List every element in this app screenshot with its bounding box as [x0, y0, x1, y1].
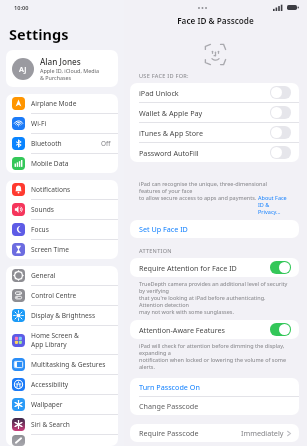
button[interactable]: Bluetooth	[6, 134, 118, 154]
staticText: iPad can recognise the unique, three-dim…	[139, 180, 289, 194]
staticText: Off	[101, 139, 111, 148]
staticText: ATTENTION	[139, 247, 172, 255]
button[interactable]: Apple Pencil	[6, 435, 118, 446]
button[interactable]: Siri & Search	[6, 415, 118, 435]
staticText: Settings	[9, 24, 69, 44]
button[interactable]: Display & Brightness	[6, 306, 118, 326]
staticText: Display & Brightness	[31, 311, 96, 320]
staticText: Airplane Mode	[31, 99, 77, 108]
staticText: 10:00	[14, 4, 29, 12]
staticText: Apple ID, iCloud, Media	[40, 67, 99, 74]
staticText: Attention-Aware Features	[139, 325, 270, 335]
other: Handle	[197, 6, 208, 10]
button[interactable]: Multitasking & Gestures	[6, 355, 118, 375]
button[interactable]: Off	[270, 86, 291, 99]
button[interactable]: Home Screen &	[6, 326, 118, 355]
button[interactable]: Mobile Data	[6, 154, 118, 173]
button[interactable]: Attention-Aware Features	[130, 320, 299, 339]
staticText: Set Up Face ID	[139, 224, 188, 234]
staticText: Sounds	[31, 205, 54, 214]
staticText: Alan Jones	[40, 56, 81, 67]
staticText: Control Centre	[31, 291, 77, 300]
button[interactable]: Sounds	[6, 200, 118, 220]
button[interactable]: Accessibility	[6, 375, 118, 395]
staticText: Mobile Data	[31, 159, 69, 168]
button[interactable]: Focus	[6, 220, 118, 240]
button[interactable]: Screen Time	[6, 240, 118, 259]
staticText: Screen Time	[31, 245, 69, 254]
staticText: Wallet & Apple Pay	[139, 108, 270, 118]
staticText: Immediately	[241, 428, 284, 438]
staticText: General	[31, 271, 56, 280]
button[interactable]: Set Up Face ID	[130, 220, 299, 238]
button[interactable]: Off	[270, 126, 291, 139]
button[interactable]: Airplane Mode	[6, 94, 118, 114]
button[interactable]: Wi-Fi	[6, 114, 118, 134]
staticText: Face ID & Passcode	[124, 15, 307, 26]
button[interactable]: Password AutoFill	[130, 143, 299, 162]
staticText: iPad Unlock	[139, 88, 270, 98]
button[interactable]: Change Passcode	[130, 397, 299, 415]
staticText: Change Passcode	[139, 401, 199, 411]
staticText: Password AutoFill	[139, 148, 270, 158]
button[interactable]: Wallpaper	[6, 395, 118, 415]
button[interactable]: On	[270, 323, 291, 336]
button[interactable]: General	[6, 266, 118, 286]
staticText: Focus	[31, 225, 49, 234]
staticText: Require Passcode	[139, 428, 241, 438]
button[interactable]: Control Centre	[6, 286, 118, 306]
staticText: About Face ID & Privacy...	[258, 194, 289, 215]
button[interactable]: Off	[270, 146, 291, 159]
button[interactable]: AJ	[6, 50, 118, 87]
staticText: Accessibility	[31, 380, 69, 389]
staticText: Wallpaper	[31, 400, 63, 409]
staticText: Wi-Fi	[31, 119, 47, 128]
staticText: to allow secure access to apps and payme…	[139, 194, 258, 201]
staticText: that you're looking at iPad before authe…	[139, 294, 289, 308]
staticText: Multitasking & Gestures	[31, 360, 106, 369]
staticText: notification when locked or lowering the…	[139, 356, 289, 370]
button[interactable]: On	[270, 261, 291, 274]
staticText: Bluetooth	[31, 139, 62, 148]
button[interactable]: Notifications	[6, 180, 118, 200]
button[interactable]: Off	[270, 106, 291, 119]
staticText: AJ	[19, 64, 27, 74]
button[interactable]: iTunes & App Store	[130, 123, 299, 142]
staticText: & Purchases	[40, 74, 72, 81]
staticText: may not work with some sunglasses.	[139, 308, 234, 315]
staticText: Require Attention for Face ID	[139, 263, 270, 273]
staticText: App Library	[31, 340, 67, 349]
staticText: Turn Passcode On	[139, 382, 200, 392]
staticText: USE FACE ID FOR:	[139, 72, 189, 80]
button[interactable]: iPad Unlock	[130, 83, 299, 102]
button[interactable]: Turn Passcode On	[130, 378, 299, 396]
button[interactable]: Wallet & Apple Pay	[130, 103, 299, 122]
button[interactable]: Require Attention for Face ID	[130, 258, 299, 277]
staticText: Siri & Search	[31, 420, 70, 429]
staticText: iPad will check for attention before dim…	[139, 342, 289, 356]
staticText: iTunes & App Store	[139, 128, 270, 138]
staticText: Notifications	[31, 185, 71, 194]
staticText: Home Screen &	[31, 331, 79, 340]
staticText: TrueDepth camera provides an additional …	[139, 280, 289, 294]
button[interactable]: Require Passcode	[130, 424, 299, 442]
